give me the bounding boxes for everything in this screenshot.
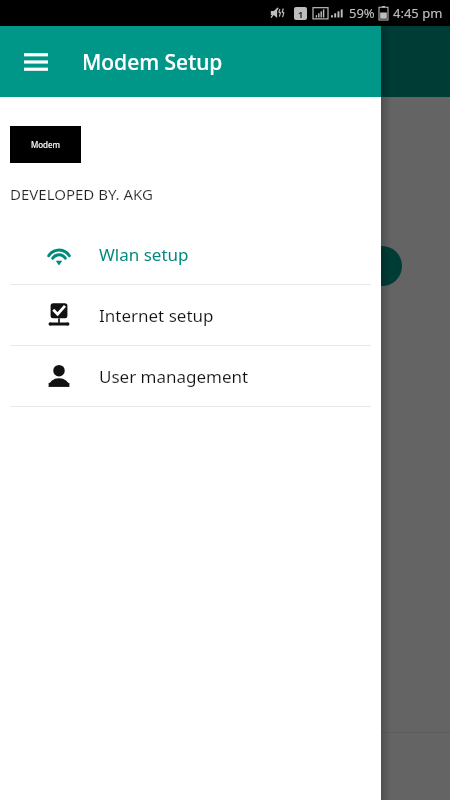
button[interactable]: User management bbox=[0, 346, 381, 406]
staticText: DEVELOPED BY. AKG bbox=[10, 184, 153, 204]
button[interactable]: Open navigation menu bbox=[10, 36, 62, 88]
button[interactable]: Wlan setup bbox=[0, 224, 381, 284]
staticText: User management bbox=[99, 365, 249, 388]
staticText: 4:45 pm bbox=[393, 4, 443, 22]
staticText: 59% bbox=[349, 4, 375, 22]
staticText: Modem Setup bbox=[82, 48, 223, 77]
staticText: 1 bbox=[298, 8, 304, 20]
staticText: Internet setup bbox=[99, 304, 214, 327]
button[interactable]: Internet setup bbox=[0, 285, 381, 345]
staticText: Modem bbox=[31, 139, 61, 150]
button[interactable] bbox=[330, 246, 402, 286]
staticText: Wlan setup bbox=[99, 243, 189, 266]
